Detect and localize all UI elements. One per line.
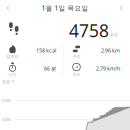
staticText: 거리 bbox=[72, 54, 80, 59]
staticText: 5,000 bbox=[1, 98, 10, 103]
staticText: 시간 bbox=[8, 72, 16, 77]
staticText: 걸음 bbox=[110, 32, 118, 37]
staticText: 2.96 km bbox=[101, 47, 120, 54]
staticText: 속도 bbox=[72, 72, 80, 77]
staticText: 66 분 bbox=[44, 65, 56, 72]
staticText: 걸음 수 bbox=[2, 79, 15, 84]
staticText: 158 kcal bbox=[36, 47, 56, 54]
button[interactable]: Previous day bbox=[1, 1, 15, 15]
staticText: 칼로리 bbox=[6, 54, 18, 59]
button[interactable]: Next day bbox=[114, 1, 128, 15]
staticText: 1월 1일 목요일 bbox=[41, 4, 88, 12]
staticText: 4,000 bbox=[1, 117, 10, 122]
staticText: 2.79 km/h bbox=[96, 65, 120, 72]
staticText: 4758 bbox=[69, 19, 109, 42]
